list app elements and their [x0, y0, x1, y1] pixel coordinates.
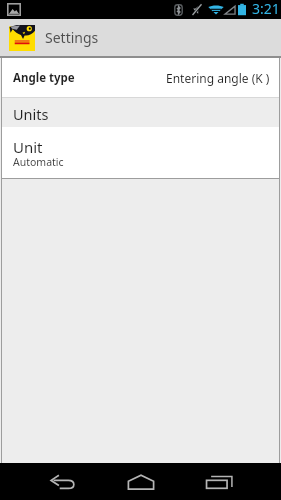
- staticText: Entering angle (K ): [166, 70, 270, 86]
- button[interactable]: Home: [110, 463, 172, 500]
- staticText: Automatic: [13, 155, 64, 169]
- staticText: Settings: [45, 28, 99, 47]
- staticText: 3:21: [252, 0, 280, 18]
- staticText: Unit: [13, 137, 43, 157]
- staticText: Angle type: [13, 70, 75, 86]
- button[interactable]: Unit: [1, 127, 280, 178]
- button[interactable]: Angle type: [1, 58, 280, 97]
- staticText: Units: [13, 104, 49, 124]
- button[interactable]: Back: [32, 463, 94, 500]
- button[interactable]: Recent apps: [188, 463, 250, 500]
